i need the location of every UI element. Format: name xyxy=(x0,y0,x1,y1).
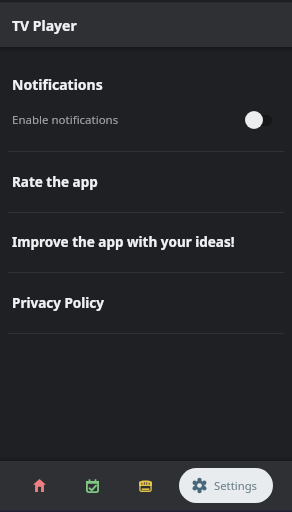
staticText: Privacy Policy xyxy=(12,294,104,312)
staticText: Rate the app xyxy=(12,173,98,191)
button[interactable]: Settings xyxy=(179,468,273,503)
button[interactable]: Privacy Policy xyxy=(0,272,292,333)
button[interactable]: Rate the app xyxy=(0,151,292,212)
button[interactable]: Improve the app with your ideas! xyxy=(0,212,292,272)
staticText: Notifications xyxy=(12,75,103,94)
staticText: Improve the app with your ideas! xyxy=(12,233,235,251)
button[interactable]: Home xyxy=(17,462,61,509)
staticText: Enable notifications xyxy=(12,112,119,128)
staticText: Settings xyxy=(214,478,257,493)
button[interactable]: Store xyxy=(123,462,167,509)
staticText: TV Player xyxy=(12,16,77,35)
button[interactable]: Schedule xyxy=(70,462,114,509)
button[interactable]: Enable notifications xyxy=(0,102,292,138)
